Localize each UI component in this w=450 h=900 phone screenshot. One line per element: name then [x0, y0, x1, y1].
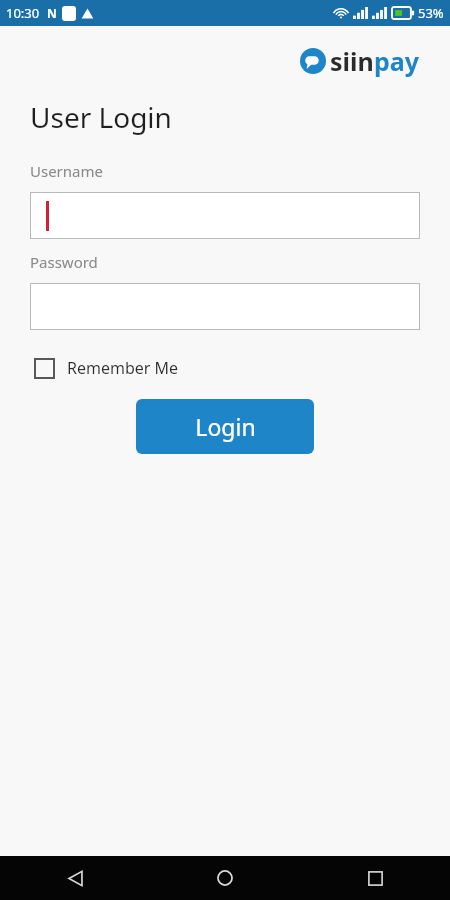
- staticText: Remember Me: [67, 357, 179, 379]
- button[interactable]: Login: [136, 399, 314, 454]
- button[interactable]: Remember Me: [30, 353, 183, 383]
- staticText: Username: [30, 161, 103, 181]
- staticText: User Login: [30, 98, 172, 136]
- button[interactable]: Back: [0, 856, 150, 900]
- button[interactable]: Home: [150, 856, 300, 900]
- button[interactable]: [30, 283, 420, 330]
- staticText: 10:30: [6, 4, 40, 22]
- staticText: siin: [330, 44, 374, 78]
- button[interactable]: Recent apps: [300, 856, 450, 900]
- staticText: 53%: [418, 4, 444, 22]
- staticText: Login: [195, 411, 256, 442]
- button[interactable]: [30, 192, 420, 239]
- staticText: N: [47, 5, 57, 21]
- staticText: pay: [374, 44, 420, 78]
- staticText: Password: [30, 252, 98, 272]
